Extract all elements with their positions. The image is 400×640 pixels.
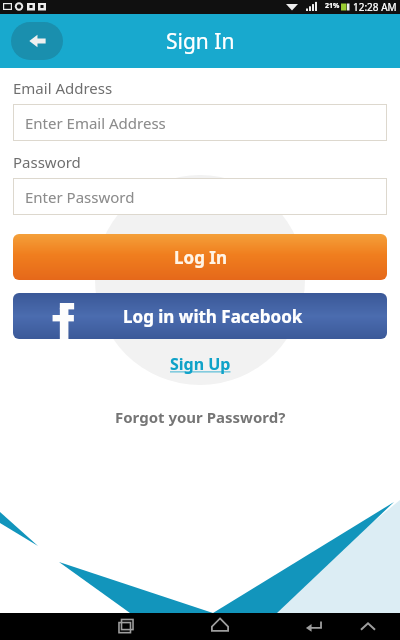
button[interactable]: Enter Email Address (13, 104, 387, 141)
staticText: 12:28 AM (353, 0, 397, 14)
staticText: Sign In (166, 27, 235, 56)
button[interactable]: Expand (350, 613, 386, 640)
staticText: Log In (174, 246, 227, 269)
staticText: 21% (325, 1, 340, 11)
staticText: Enter Email Address (25, 113, 166, 133)
button[interactable]: Log In (13, 234, 387, 280)
button[interactable]: Recents (108, 613, 144, 640)
button[interactable]: Sign Up (164, 351, 237, 377)
staticText: Email Address (13, 78, 113, 98)
button[interactable]: Log in with Facebook (13, 293, 387, 339)
button[interactable]: Forgot your Password? (111, 403, 290, 431)
staticText: Password (13, 152, 81, 172)
button[interactable]: Enter Password (13, 178, 387, 215)
button[interactable]: Back (296, 613, 332, 640)
button[interactable]: Home (202, 613, 238, 640)
button[interactable]: Back (11, 22, 63, 60)
staticText: Enter Password (25, 187, 135, 207)
staticText: Log in with Facebook (123, 305, 303, 328)
